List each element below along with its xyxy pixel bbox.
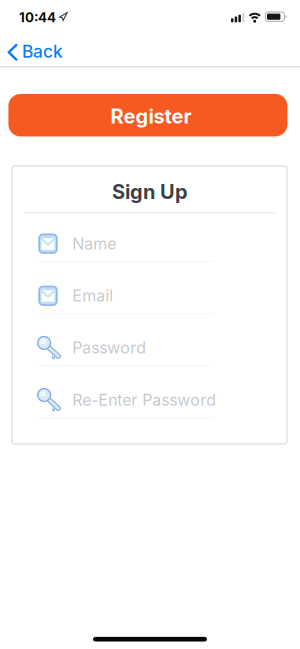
staticText: Password [72,338,146,357]
button[interactable]: Password [39,331,213,365]
staticText: 10:44 [19,9,56,25]
button[interactable]: Email [39,279,213,313]
staticText: Name [72,234,116,253]
button[interactable]: Back [6,36,78,66]
button[interactable]: Register [8,94,287,136]
staticText: Back [22,41,63,62]
staticText: Sign Up [112,180,188,203]
button[interactable]: Name [39,227,213,261]
staticText: Register [110,104,191,128]
button[interactable]: Re-Enter Password [39,383,213,417]
staticText: Email [72,286,113,305]
staticText: Re-Enter Password [72,390,216,409]
